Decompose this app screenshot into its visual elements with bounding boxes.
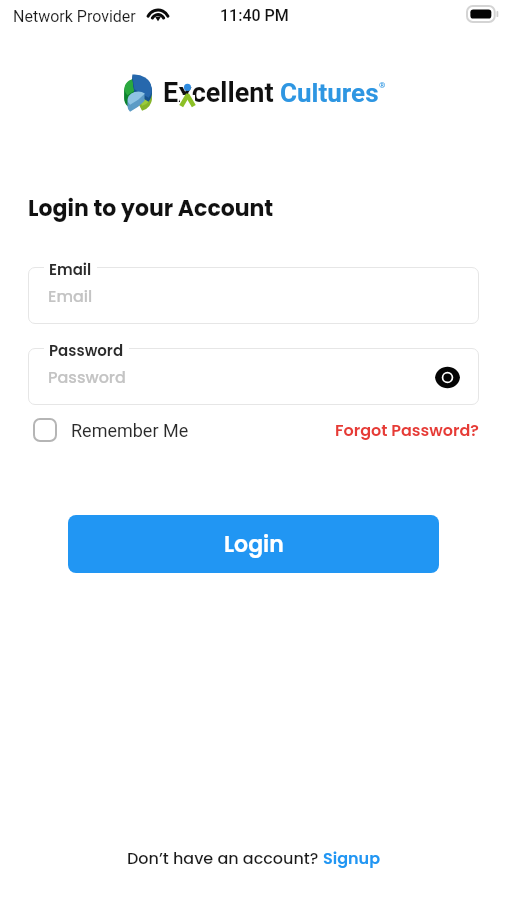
- staticText: Excellent: [163, 77, 274, 109]
- staticText: Email: [49, 259, 92, 280]
- button[interactable]: Show password: [432, 362, 462, 392]
- staticText: Forgot Password?: [335, 419, 479, 441]
- staticText: Signup: [323, 847, 381, 869]
- staticText: Network Provider: [13, 7, 136, 26]
- staticText: Remember Me: [71, 420, 189, 441]
- button[interactable]: Forgot Password?: [335, 419, 479, 441]
- button[interactable]: Password: [28, 348, 479, 405]
- staticText: Password: [49, 340, 124, 361]
- staticText: Don’t have an account?: [127, 847, 323, 869]
- staticText: ®: [379, 81, 386, 90]
- staticText: Password: [48, 366, 126, 388]
- staticText: 11:40 PM: [220, 6, 289, 25]
- staticText: Cultures: [280, 78, 379, 108]
- staticText: Login to your Account: [28, 193, 274, 224]
- button[interactable]: Login: [68, 515, 439, 573]
- button[interactable]: Email: [28, 267, 479, 324]
- button[interactable]: Remember Me: [33, 418, 189, 442]
- staticText: Login: [224, 529, 284, 560]
- button[interactable]: Signup: [323, 847, 381, 869]
- staticText: Email: [48, 285, 93, 307]
